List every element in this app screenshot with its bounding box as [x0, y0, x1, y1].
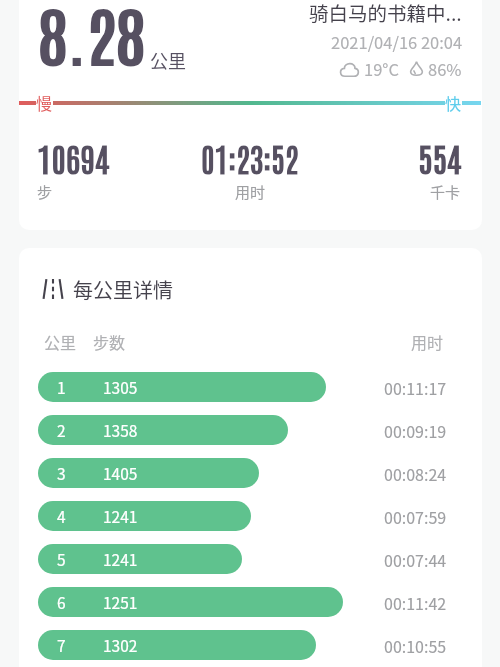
staticText: 6	[57, 591, 66, 613]
staticText: 步数	[93, 330, 126, 353]
staticText: 用时	[411, 330, 444, 353]
staticText: 快	[445, 91, 462, 114]
button[interactable]: 2	[19, 415, 482, 445]
staticText: 86%	[428, 57, 462, 81]
staticText: 步	[37, 181, 53, 203]
staticText: 慢	[36, 91, 53, 114]
button[interactable]: 3	[19, 458, 482, 488]
button[interactable]: 6	[19, 587, 482, 617]
staticText: 公里	[150, 47, 186, 73]
staticText: 00:11:42	[384, 591, 447, 614]
staticText: 5	[57, 548, 66, 570]
staticText: 1241	[103, 548, 138, 570]
staticText: 00:11:17	[384, 376, 447, 399]
staticText: 3	[57, 462, 66, 484]
staticText: 1305	[103, 376, 138, 398]
other: Weather	[339, 62, 359, 77]
staticText: 用时	[235, 181, 266, 203]
staticText: 00:09:19	[384, 419, 447, 442]
staticText: 千卡	[430, 181, 461, 203]
staticText: 7	[57, 634, 66, 656]
staticText: 00:08:24	[384, 462, 447, 485]
button[interactable]: 7	[19, 630, 482, 660]
button[interactable]	[19, 0, 482, 230]
staticText: 10694	[37, 137, 109, 178]
staticText: 公里	[44, 330, 77, 353]
staticText: 01:23:52	[201, 137, 299, 178]
staticText: 1241	[103, 505, 138, 527]
staticText: 1302	[103, 634, 138, 656]
staticText: 00:10:55	[384, 634, 447, 657]
button[interactable]: 5	[19, 544, 482, 574]
staticText: 00:07:44	[384, 548, 447, 571]
staticText: 00:07:59	[384, 505, 447, 528]
staticText: 4	[57, 505, 66, 527]
staticText: 8.28	[38, 0, 146, 74]
staticText: 每公里详情	[73, 275, 173, 304]
staticText: 1251	[103, 591, 138, 613]
other: Humidity	[410, 61, 423, 77]
staticText: 骑白马的书籍中...	[309, 0, 462, 26]
staticText: 1	[57, 376, 66, 398]
button[interactable]: 1	[19, 372, 482, 402]
staticText: 2	[57, 419, 66, 441]
staticText: 19°C	[364, 57, 399, 81]
staticText: 554	[418, 137, 462, 178]
staticText: 1405	[103, 462, 138, 484]
staticText: 1358	[103, 419, 138, 441]
button[interactable]: 4	[19, 501, 482, 531]
staticText: 2021/04/16 20:04	[331, 30, 463, 54]
